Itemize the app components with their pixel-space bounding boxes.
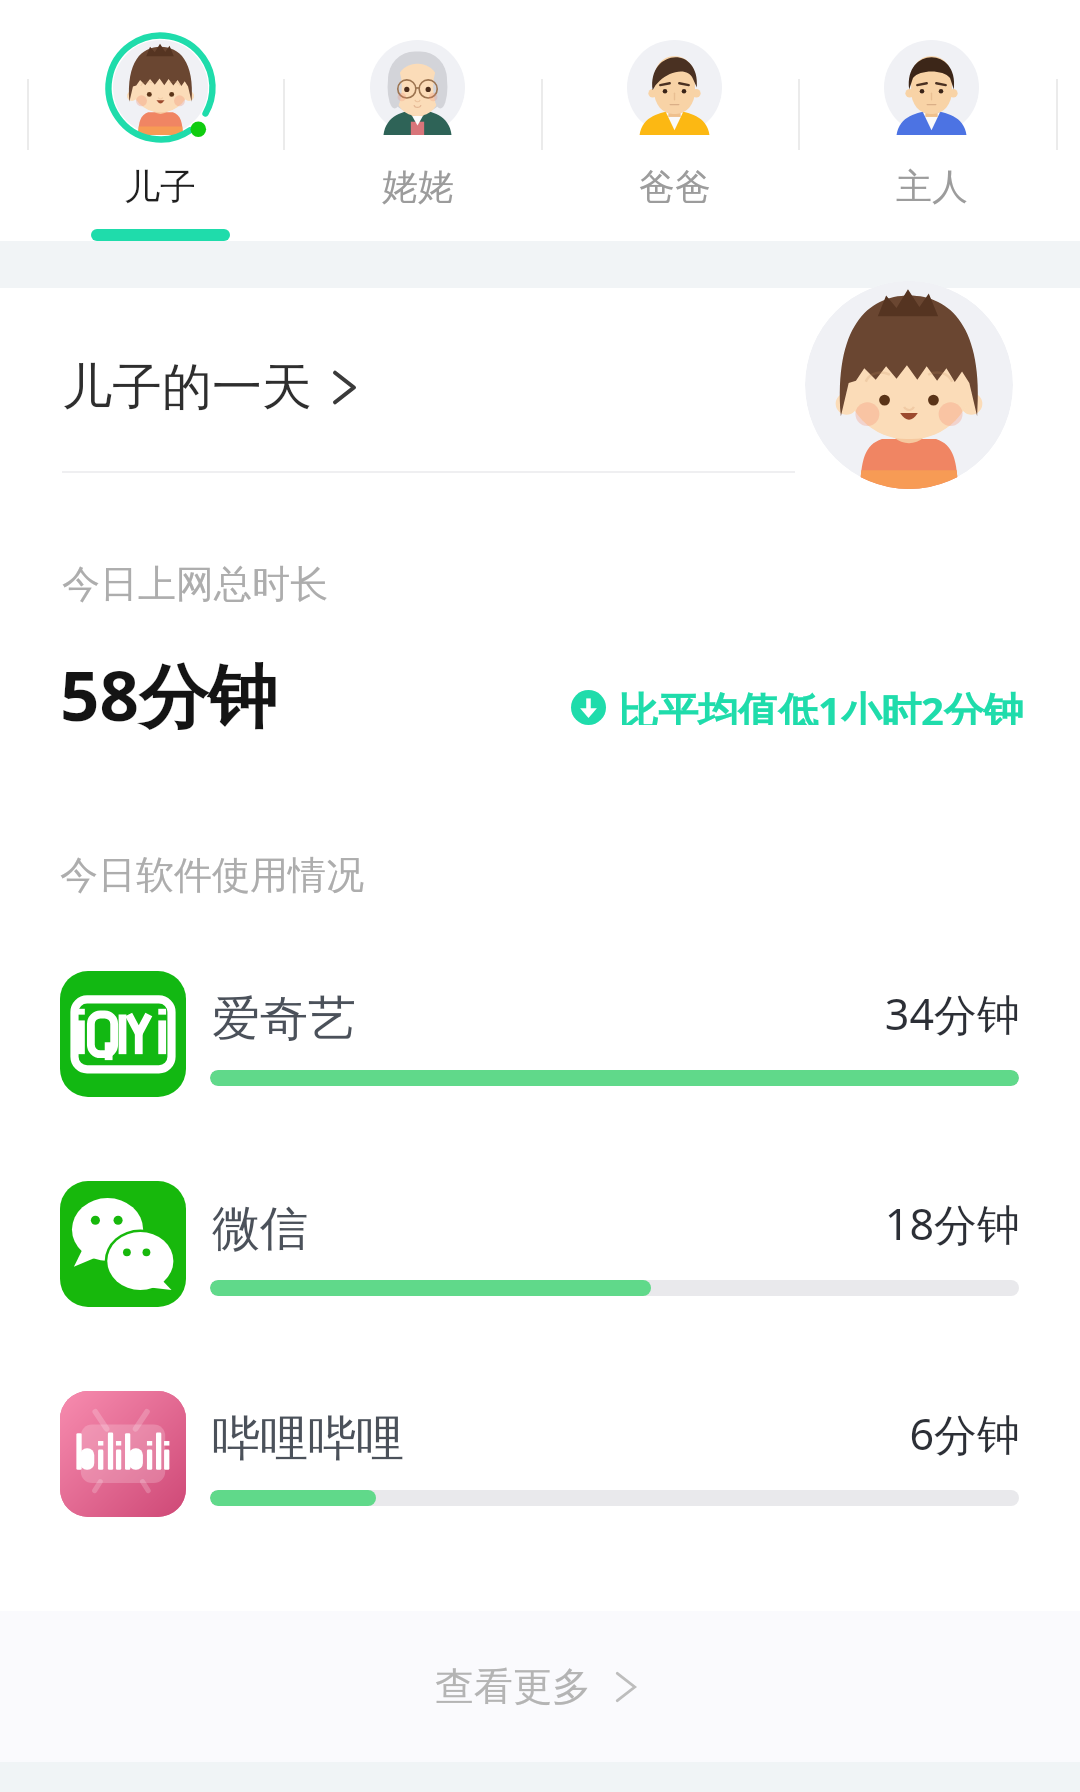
staticText: 6分钟 [702,1404,1020,1463]
staticText: 58分钟 [60,647,277,741]
staticText: 儿子的一天 [62,356,312,419]
staticText: 查看更多 [435,1662,591,1711]
staticText: 姥姥 [382,164,454,209]
staticText: 儿子 [124,164,196,209]
staticText: 爱奇艺 [212,989,356,1049]
staticText: 微信 [212,1199,308,1259]
staticText: 今日软件使用情况 [60,851,364,899]
button[interactable]: 查看更多 [0,1611,1080,1762]
button[interactable]: 主人 [803,0,1060,241]
button[interactable]: 爱奇艺 [0,971,1080,1101]
staticText: 主人 [896,164,968,209]
button[interactable]: Child profile avatar [805,281,1013,489]
button[interactable]: 微信 [0,1181,1080,1311]
staticText: 比平均值低1小时2分钟 [618,683,1024,725]
staticText: 18分钟 [702,1194,1020,1253]
button[interactable]: 儿子的一天 [62,351,365,423]
staticText: 今日上网总时长 [62,560,328,608]
staticText: 哔哩哔哩 [212,1409,404,1469]
button[interactable]: 姥姥 [289,0,546,241]
button[interactable]: 儿子 [31,0,289,241]
staticText: 爸爸 [639,164,711,209]
button[interactable]: 爸爸 [546,0,803,241]
button[interactable]: 哔哩哔哩 [0,1391,1080,1521]
staticText: 34分钟 [702,984,1020,1043]
